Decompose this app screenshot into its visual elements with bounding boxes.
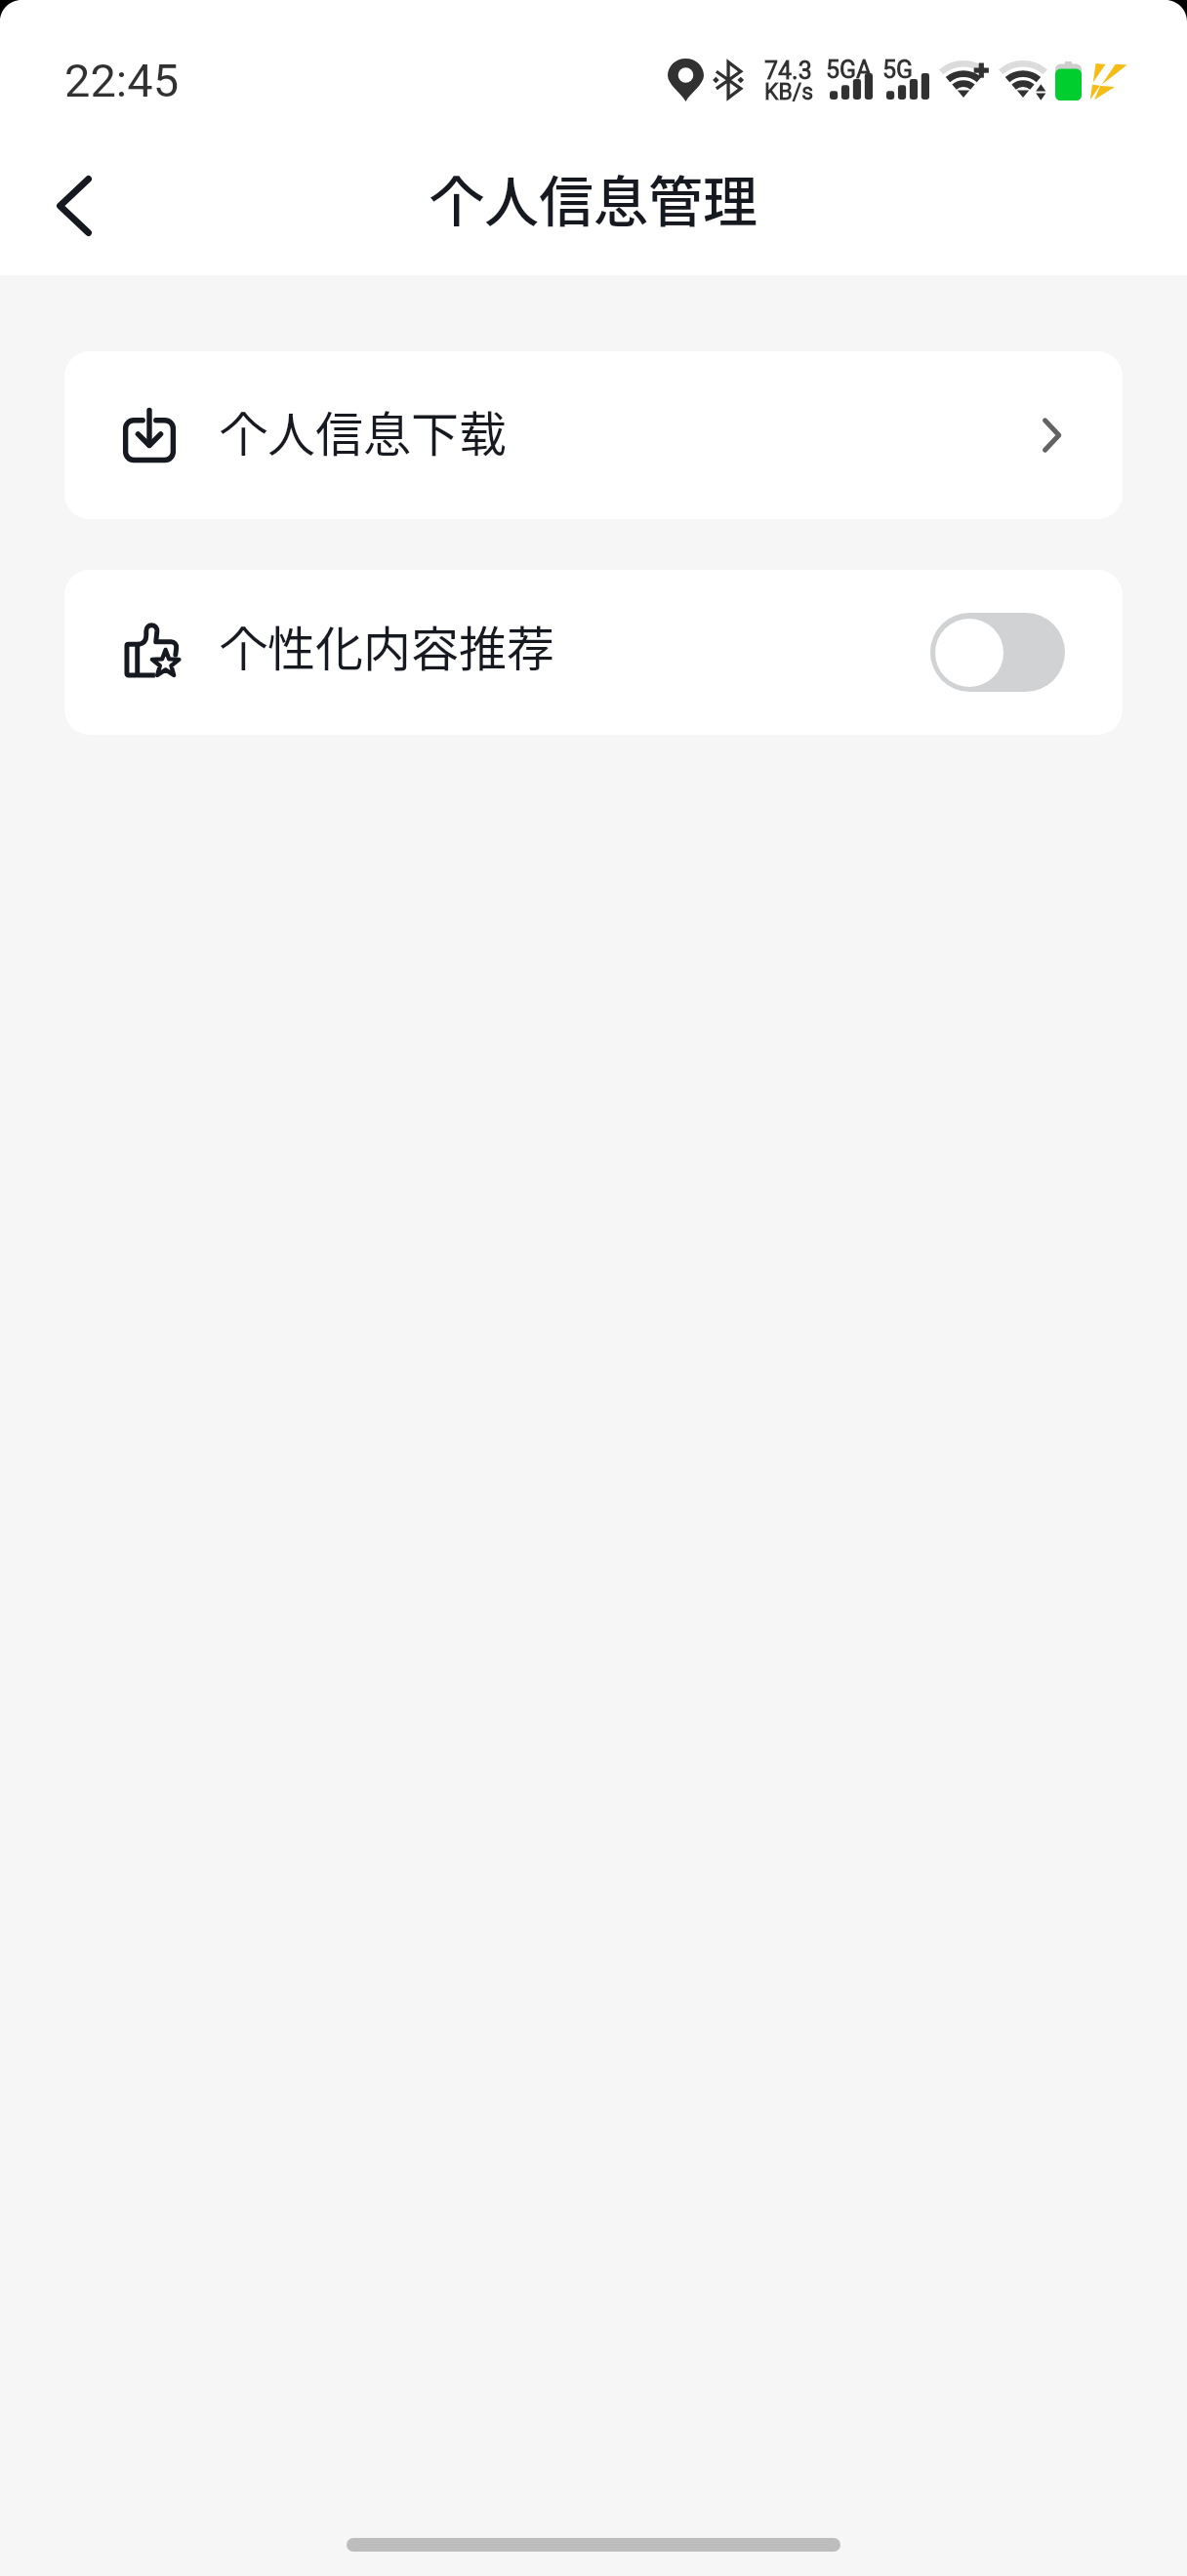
button[interactable]: 个性化内容推荐开关 xyxy=(930,613,1065,692)
button[interactable]: 返回 xyxy=(24,156,124,256)
staticText: 个性化内容推荐 xyxy=(220,611,555,680)
staticText: 5GA xyxy=(826,56,873,84)
staticText: KB/s xyxy=(764,79,814,105)
button[interactable]: 个人信息下载 xyxy=(64,351,1123,519)
button[interactable]: 个性化内容推荐 xyxy=(64,570,1123,735)
staticText: 22:45 xyxy=(64,54,180,107)
staticText: 个人信息管理 xyxy=(430,158,757,237)
staticText: 5G xyxy=(882,56,914,84)
staticText: 个人信息下载 xyxy=(220,396,508,465)
staticText: 74.3 xyxy=(764,57,812,85)
